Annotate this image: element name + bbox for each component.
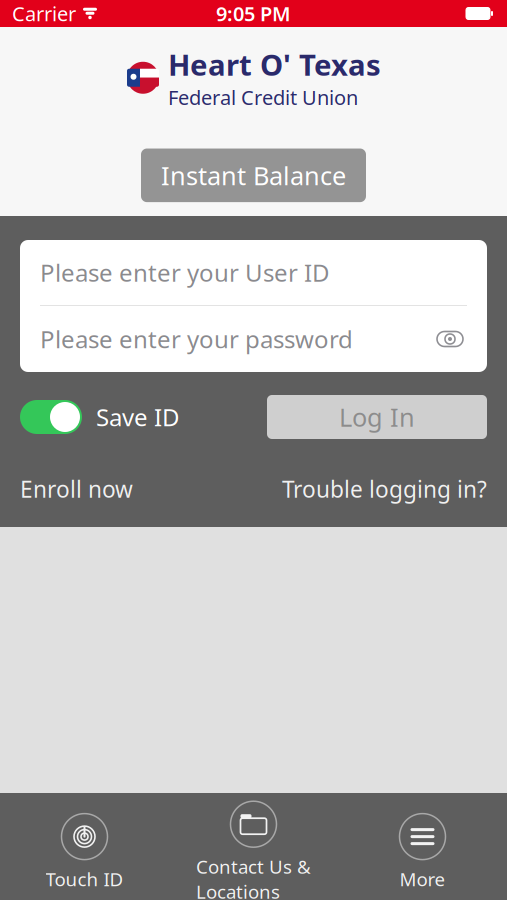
button[interactable]: Touch ID (0, 814, 169, 891)
staticText: Contact Us & Locations (196, 854, 311, 900)
staticText: Log In (339, 400, 415, 434)
staticText: 9:05 PM (216, 0, 291, 27)
button[interactable]: Trouble logging in? (282, 474, 487, 504)
staticText: Federal Credit Union (168, 84, 358, 111)
button[interactable]: Instant Balance (141, 148, 366, 202)
button[interactable]: Contact Us & Locations (169, 801, 338, 900)
staticText: Trouble logging in? (282, 474, 487, 504)
button[interactable]: Show password (433, 322, 467, 356)
staticText: Heart O' Texas (168, 45, 381, 84)
staticText: Save ID (96, 401, 180, 433)
staticText: More (399, 867, 445, 891)
staticText: Please enter your password (40, 323, 353, 355)
button[interactable]: Log In (267, 395, 487, 439)
staticText: Touch ID (45, 867, 123, 891)
button[interactable]: More (338, 814, 507, 891)
button[interactable]: Enroll now (20, 474, 133, 504)
staticText: Enroll now (20, 474, 133, 504)
staticText: Instant Balance (161, 158, 346, 192)
staticText: Please enter your User ID (40, 257, 330, 288)
staticText: Carrier (12, 0, 76, 27)
button[interactable]: Save ID (20, 400, 180, 434)
